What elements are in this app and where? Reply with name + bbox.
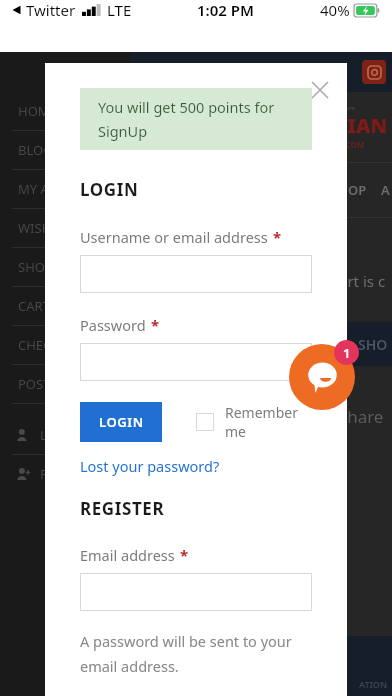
staticText: HOME	[18, 102, 57, 120]
staticText: SHO	[358, 335, 388, 354]
staticText: SHOP	[331, 181, 367, 199]
staticText: REGISTER	[80, 497, 165, 520]
button[interactable]: WISHLIST	[0, 209, 130, 247]
button[interactable]: MY ACCOUNT	[0, 170, 130, 208]
staticText: CHECKOUT	[18, 336, 86, 354]
staticText: You will get 500 points for SignUp	[98, 97, 302, 141]
staticText: MY ACCOUNT	[18, 180, 102, 198]
staticText: share	[339, 405, 384, 428]
staticText: Email address	[80, 545, 175, 565]
staticText: A password will be sent to your email ad…	[80, 631, 312, 677]
staticText: *	[273, 227, 282, 247]
staticText: LOGIN	[40, 426, 81, 444]
button[interactable]	[80, 255, 312, 293]
button[interactable]: Remember me	[196, 403, 312, 441]
staticText: 1	[343, 344, 351, 362]
staticText: WISHLIST	[18, 219, 77, 237]
staticText: REGISTER	[40, 465, 99, 483]
button[interactable]: CART	[0, 287, 130, 325]
button[interactable]: LOGIN	[0, 416, 130, 454]
staticText: 1:02 PM	[197, 0, 254, 20]
button[interactable]: SHOP	[0, 248, 130, 286]
staticText: Your Favourite Store	[307, 105, 355, 112]
staticText: LOGIN	[80, 178, 139, 201]
staticText: Username or email address	[80, 227, 268, 247]
button[interactable]	[80, 573, 312, 611]
staticText: Lost your password?	[80, 456, 220, 476]
button[interactable]: POSTS	[0, 365, 130, 403]
button[interactable]: LOGIN	[80, 402, 162, 442]
staticText: f	[338, 59, 346, 85]
staticText: SHOP	[18, 258, 53, 276]
button[interactable]	[80, 343, 312, 381]
button[interactable]: Close	[303, 73, 337, 107]
button[interactable]: HOME	[0, 92, 130, 130]
staticText: BLOG	[18, 141, 53, 159]
staticText: POSTS	[18, 375, 58, 393]
staticText: 40%	[320, 0, 350, 20]
staticText: ATION	[359, 678, 388, 690]
button[interactable]: Lost your password?	[80, 456, 220, 476]
button[interactable]: Open chat	[289, 344, 355, 410]
staticText: Twitter	[26, 0, 76, 20]
staticText: art is c	[339, 271, 386, 291]
staticText: *	[180, 545, 189, 565]
button[interactable]: CHECKOUT	[0, 326, 130, 364]
staticText: Password	[80, 315, 146, 335]
staticText: Remember me	[225, 403, 312, 441]
button[interactable]: BLOG	[0, 131, 130, 169]
staticText: A	[381, 181, 390, 199]
button[interactable]: REGISTER	[0, 455, 130, 493]
staticText: CART	[18, 297, 50, 315]
staticText: LOGIN	[99, 413, 144, 431]
staticText: *	[151, 315, 160, 335]
staticText: LTE	[107, 0, 132, 20]
staticText: GROCERY.COM	[307, 139, 365, 150]
staticText: INDIAN	[307, 112, 388, 139]
